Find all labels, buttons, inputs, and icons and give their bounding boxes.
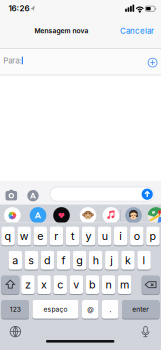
button[interactable]: a bbox=[8, 250, 22, 270]
staticText: l bbox=[143, 254, 146, 267]
staticText: m bbox=[120, 278, 129, 291]
staticText: b bbox=[89, 278, 96, 291]
button[interactable]: o bbox=[130, 226, 144, 246]
staticText: k bbox=[125, 254, 131, 267]
button[interactable]: h bbox=[89, 250, 102, 270]
button[interactable]: s bbox=[25, 250, 38, 270]
button[interactable]: l bbox=[137, 250, 151, 270]
button[interactable]: p bbox=[146, 226, 160, 246]
staticText: r bbox=[54, 230, 58, 242]
staticText: espaço bbox=[43, 305, 67, 313]
staticText: f bbox=[62, 254, 66, 267]
staticText: x bbox=[41, 278, 47, 291]
button[interactable]: g bbox=[73, 250, 86, 270]
button[interactable]: Send bbox=[141, 188, 153, 200]
button[interactable]: Camera bbox=[4, 189, 18, 201]
staticText: p bbox=[149, 230, 156, 242]
button[interactable]: Memoji Stickers bbox=[125, 207, 142, 224]
staticText: h bbox=[93, 254, 99, 267]
staticText: 123 bbox=[10, 305, 21, 313]
button[interactable]: enter bbox=[122, 299, 159, 319]
staticText: q bbox=[5, 230, 12, 242]
staticText: n bbox=[105, 278, 111, 291]
button[interactable]: q bbox=[1, 226, 15, 246]
button[interactable]: b bbox=[86, 275, 99, 294]
button[interactable]: t bbox=[66, 226, 79, 246]
button[interactable]: e bbox=[33, 226, 47, 246]
staticText: y bbox=[85, 230, 91, 242]
button[interactable]: i bbox=[114, 226, 127, 246]
staticText: v bbox=[73, 278, 79, 291]
button[interactable]: espaço bbox=[32, 299, 78, 319]
staticText: u bbox=[102, 230, 108, 242]
button[interactable]: j bbox=[105, 250, 119, 270]
button[interactable]: Animoji bbox=[79, 207, 96, 224]
staticText: z bbox=[25, 278, 31, 291]
button[interactable]: 123 bbox=[1, 299, 29, 319]
staticText: d bbox=[44, 254, 51, 267]
button[interactable]: d bbox=[41, 250, 54, 270]
staticText: o bbox=[134, 230, 140, 242]
staticText: e bbox=[37, 230, 43, 242]
button[interactable]: m bbox=[118, 275, 131, 294]
button[interactable]: Cancelar bbox=[120, 26, 154, 36]
staticText: enter bbox=[132, 305, 149, 313]
staticText: a bbox=[12, 254, 18, 267]
button[interactable]: Add contact bbox=[146, 56, 160, 70]
staticText: c bbox=[57, 278, 63, 291]
button[interactable]: v bbox=[70, 275, 83, 294]
button[interactable]: f bbox=[57, 250, 70, 270]
staticText: Mensagem nova bbox=[34, 27, 88, 35]
button[interactable]: n bbox=[102, 275, 115, 294]
button[interactable]: r bbox=[50, 226, 63, 246]
staticText: j bbox=[110, 254, 113, 267]
staticText: 16:26 bbox=[8, 4, 29, 13]
button[interactable]: y bbox=[82, 226, 95, 246]
staticText: s bbox=[28, 254, 34, 267]
staticText: . bbox=[109, 305, 111, 314]
button[interactable]: u bbox=[98, 226, 111, 246]
staticText: Para: bbox=[3, 56, 21, 65]
button[interactable]: w bbox=[17, 226, 31, 246]
staticText: t bbox=[71, 230, 74, 242]
button[interactable]: x bbox=[37, 275, 51, 294]
button[interactable]: Dictate bbox=[139, 325, 152, 338]
staticText: @ bbox=[87, 305, 93, 313]
staticText: w bbox=[20, 230, 29, 242]
button[interactable]: Maps bbox=[147, 207, 161, 224]
button[interactable]: iMessage text field bbox=[50, 187, 154, 201]
button[interactable]: Next keyboard bbox=[9, 325, 22, 338]
button[interactable]: Music bbox=[102, 207, 119, 224]
staticText: Cancelar bbox=[120, 26, 154, 36]
button[interactable]: Photos bbox=[4, 207, 21, 224]
button[interactable]: Digital Touch bbox=[53, 207, 70, 224]
staticText: g bbox=[76, 254, 83, 267]
button[interactable]: Delete bbox=[142, 275, 160, 294]
button[interactable]: Shift bbox=[1, 275, 19, 294]
button[interactable]: k bbox=[121, 250, 135, 270]
button[interactable]: c bbox=[53, 275, 67, 294]
button[interactable]: . bbox=[102, 299, 118, 319]
button[interactable]: @ bbox=[82, 299, 98, 319]
button[interactable]: App Store bbox=[29, 207, 46, 224]
button[interactable]: z bbox=[21, 275, 35, 294]
button[interactable]: Apps bbox=[26, 189, 39, 202]
staticText: i bbox=[119, 230, 122, 242]
